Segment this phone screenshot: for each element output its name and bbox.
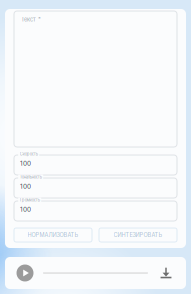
staticText: 100	[20, 205, 31, 213]
button[interactable]: НОРМАЛИЗОВАТЬ	[14, 228, 92, 242]
staticText: НОРМАЛИЗОВАТЬ	[27, 232, 78, 238]
staticText: 100	[20, 182, 31, 190]
staticText: Скорость	[20, 151, 38, 156]
staticText: СИНТЕЗИРОВАТЬ	[113, 232, 162, 238]
staticText: Громкость	[20, 197, 40, 202]
staticText: Текст *	[21, 16, 41, 23]
button[interactable]: СИНТЕЗИРОВАТЬ	[99, 228, 177, 242]
button[interactable]: Download	[154, 261, 178, 285]
staticText: Тональность	[20, 174, 42, 179]
staticText: 100	[20, 159, 31, 167]
button[interactable]: Play	[13, 261, 37, 285]
